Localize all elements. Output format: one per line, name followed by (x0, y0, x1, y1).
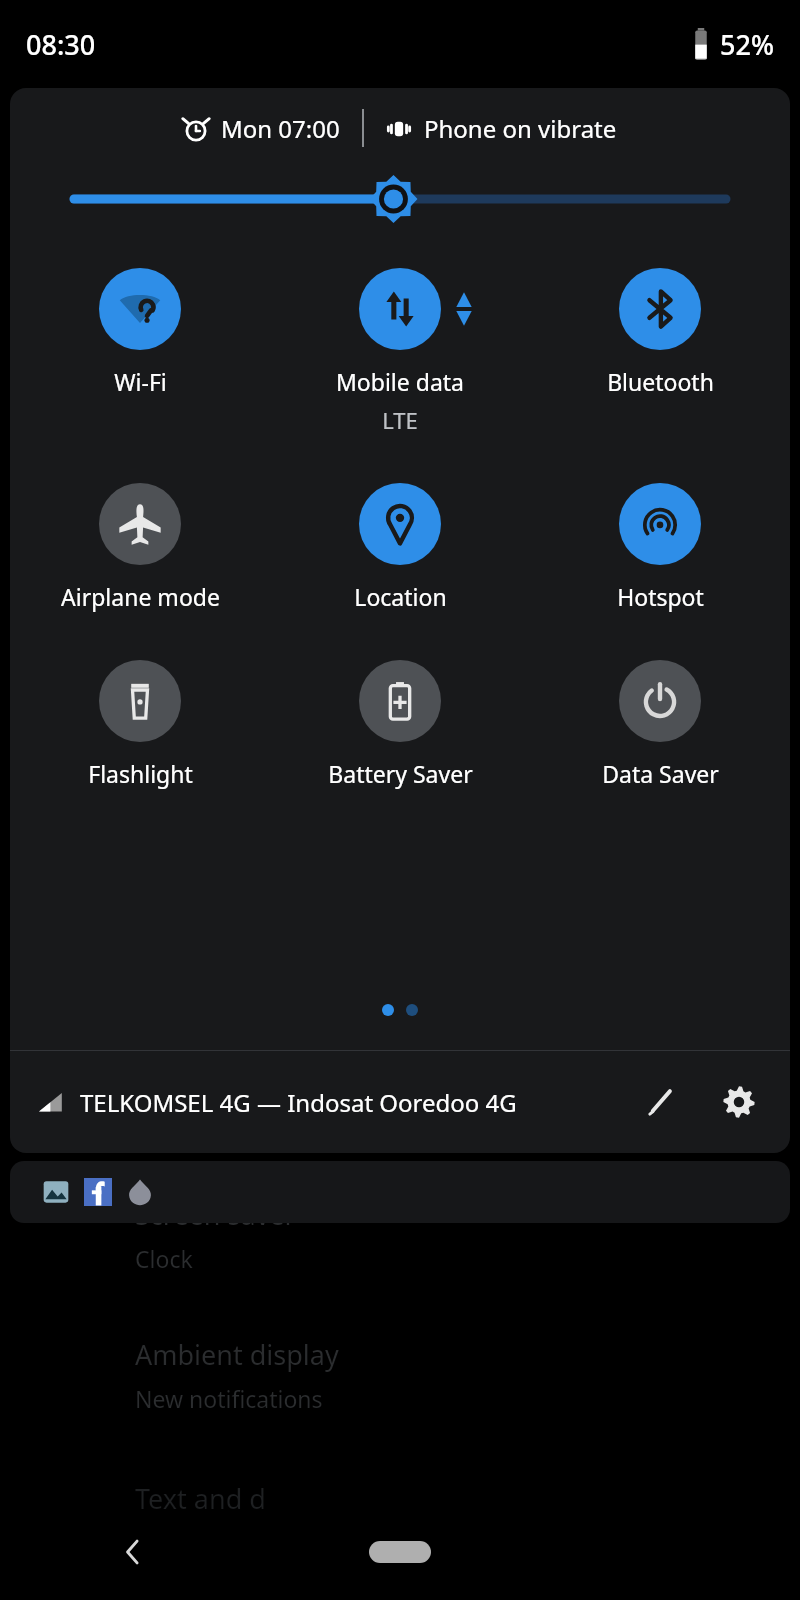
button[interactable]: Airplane mode (10, 483, 270, 612)
staticText: TELKOMSEL 4G — Indosat Ooredoo 4G (80, 1086, 620, 1119)
staticText: Location (354, 581, 447, 612)
button[interactable]: Mobile data (270, 268, 530, 435)
staticText: Clock (135, 1243, 193, 1274)
staticText: Hotspot (617, 581, 704, 612)
staticText: Battery Saver (328, 758, 473, 789)
staticText: Flashlight (88, 758, 193, 789)
button[interactable]: Edit tiles (632, 1073, 690, 1131)
staticText: Ambient display (135, 1336, 339, 1373)
staticText: Text and d (135, 1480, 266, 1517)
staticText: 52% (720, 26, 774, 63)
button[interactable]: Home (266, 1504, 533, 1600)
staticText: Bluetooth (607, 366, 714, 397)
button[interactable]: Wi-Fi (10, 268, 270, 397)
button[interactable]: Data Saver (530, 660, 790, 789)
button[interactable]: Brightness (74, 168, 726, 230)
button[interactable]: Location (270, 483, 530, 612)
button[interactable]: Settings (710, 1073, 768, 1131)
button[interactable]: Hotspot (530, 483, 790, 612)
staticText: New notifications (135, 1383, 323, 1414)
button[interactable] (10, 1161, 790, 1223)
staticText: Screen saver (135, 1196, 296, 1233)
button[interactable]: Phone on vibrate (382, 106, 621, 151)
staticText: Airplane mode (61, 581, 220, 612)
staticText: Mon 07:00 (221, 112, 340, 145)
staticText: Data Saver (602, 758, 719, 789)
button[interactable]: Battery Saver (270, 660, 530, 789)
staticText: LTE (382, 405, 418, 435)
button[interactable]: Flashlight (10, 660, 270, 789)
staticText: 08:30 (26, 26, 96, 63)
staticText: Mobile data (336, 366, 464, 397)
staticText: Phone on vibrate (424, 112, 617, 145)
staticText: Wi-Fi (114, 366, 167, 397)
button[interactable]: Bluetooth (530, 268, 790, 397)
button[interactable]: Back (0, 1504, 266, 1600)
button[interactable]: Mon 07:00 (179, 106, 344, 151)
